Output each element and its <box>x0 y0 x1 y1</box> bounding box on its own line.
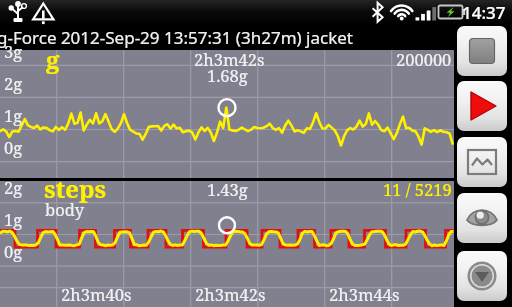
button[interactable]: Show <box>457 193 507 243</box>
button[interactable]: Stop <box>457 26 507 76</box>
staticText: 1g <box>4 208 23 230</box>
staticText: 1.43g <box>207 178 248 200</box>
staticText: 2g <box>4 72 23 94</box>
staticText: 2h3m40s <box>61 283 132 305</box>
staticText: 2h3m44s <box>329 283 400 305</box>
staticText: 0g <box>4 240 23 262</box>
staticText: 1g <box>4 104 23 126</box>
button[interactable]: Play <box>457 81 507 131</box>
staticText: steps <box>44 172 107 205</box>
staticText: g-Force 2012-Sep-29 13:57:31 (3h27m) jac… <box>0 26 353 49</box>
staticText: 14:37 <box>462 1 506 24</box>
button[interactable]: Graph <box>457 137 507 187</box>
staticText: 11 / 5219 <box>383 178 452 200</box>
staticText: 2h3m42s <box>195 283 266 305</box>
staticText: body <box>45 198 85 220</box>
button[interactable]: Scroll down <box>457 251 507 301</box>
staticText: g <box>46 43 60 76</box>
staticText: 2g <box>4 176 23 198</box>
staticText: 3g <box>4 40 23 62</box>
staticText: 2h3m42s <box>194 48 265 70</box>
staticText: 1.68g <box>207 64 248 86</box>
staticText: 0g <box>4 136 23 158</box>
staticText: 200000 <box>396 48 452 70</box>
